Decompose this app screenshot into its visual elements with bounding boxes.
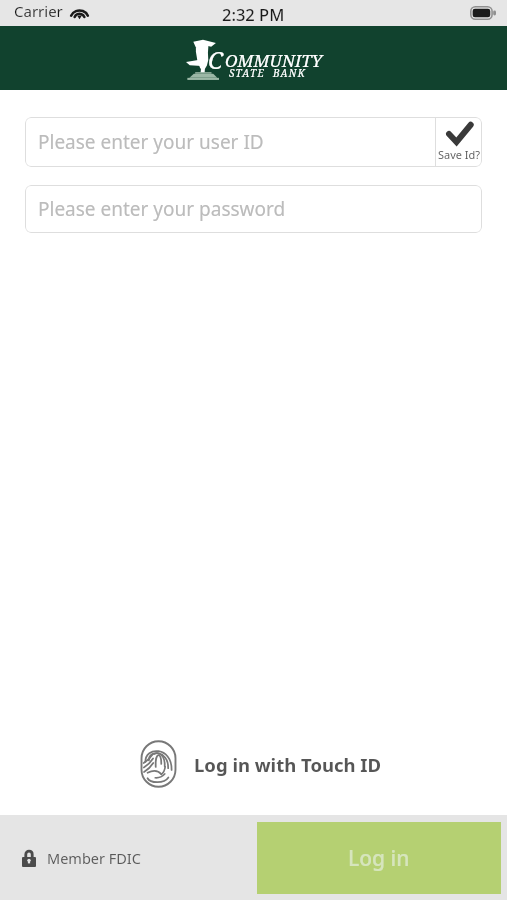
staticText: Member FDIC	[47, 848, 141, 868]
staticText: OMMUNITY	[225, 49, 323, 72]
button[interactable]: Member FDIC	[22, 848, 141, 868]
button[interactable]: Please enter your password	[25, 185, 482, 233]
staticText: C	[208, 43, 224, 76]
button[interactable]: Log in	[257, 822, 501, 894]
staticText: STATE BANK	[229, 66, 307, 80]
staticText: Log in with Touch ID	[194, 752, 382, 777]
button[interactable]: Log in with Touch ID	[137, 739, 382, 789]
staticText: Save Id?	[438, 147, 481, 162]
staticText: Log in	[348, 844, 410, 873]
staticText: Carrier	[14, 1, 63, 21]
staticText: Please enter your password	[38, 196, 286, 222]
button[interactable]: Save Id?	[436, 117, 482, 167]
staticText: 2:32 PM	[222, 3, 285, 25]
button[interactable]: Please enter your user ID	[25, 117, 435, 167]
staticText: Please enter your user ID	[38, 129, 264, 155]
